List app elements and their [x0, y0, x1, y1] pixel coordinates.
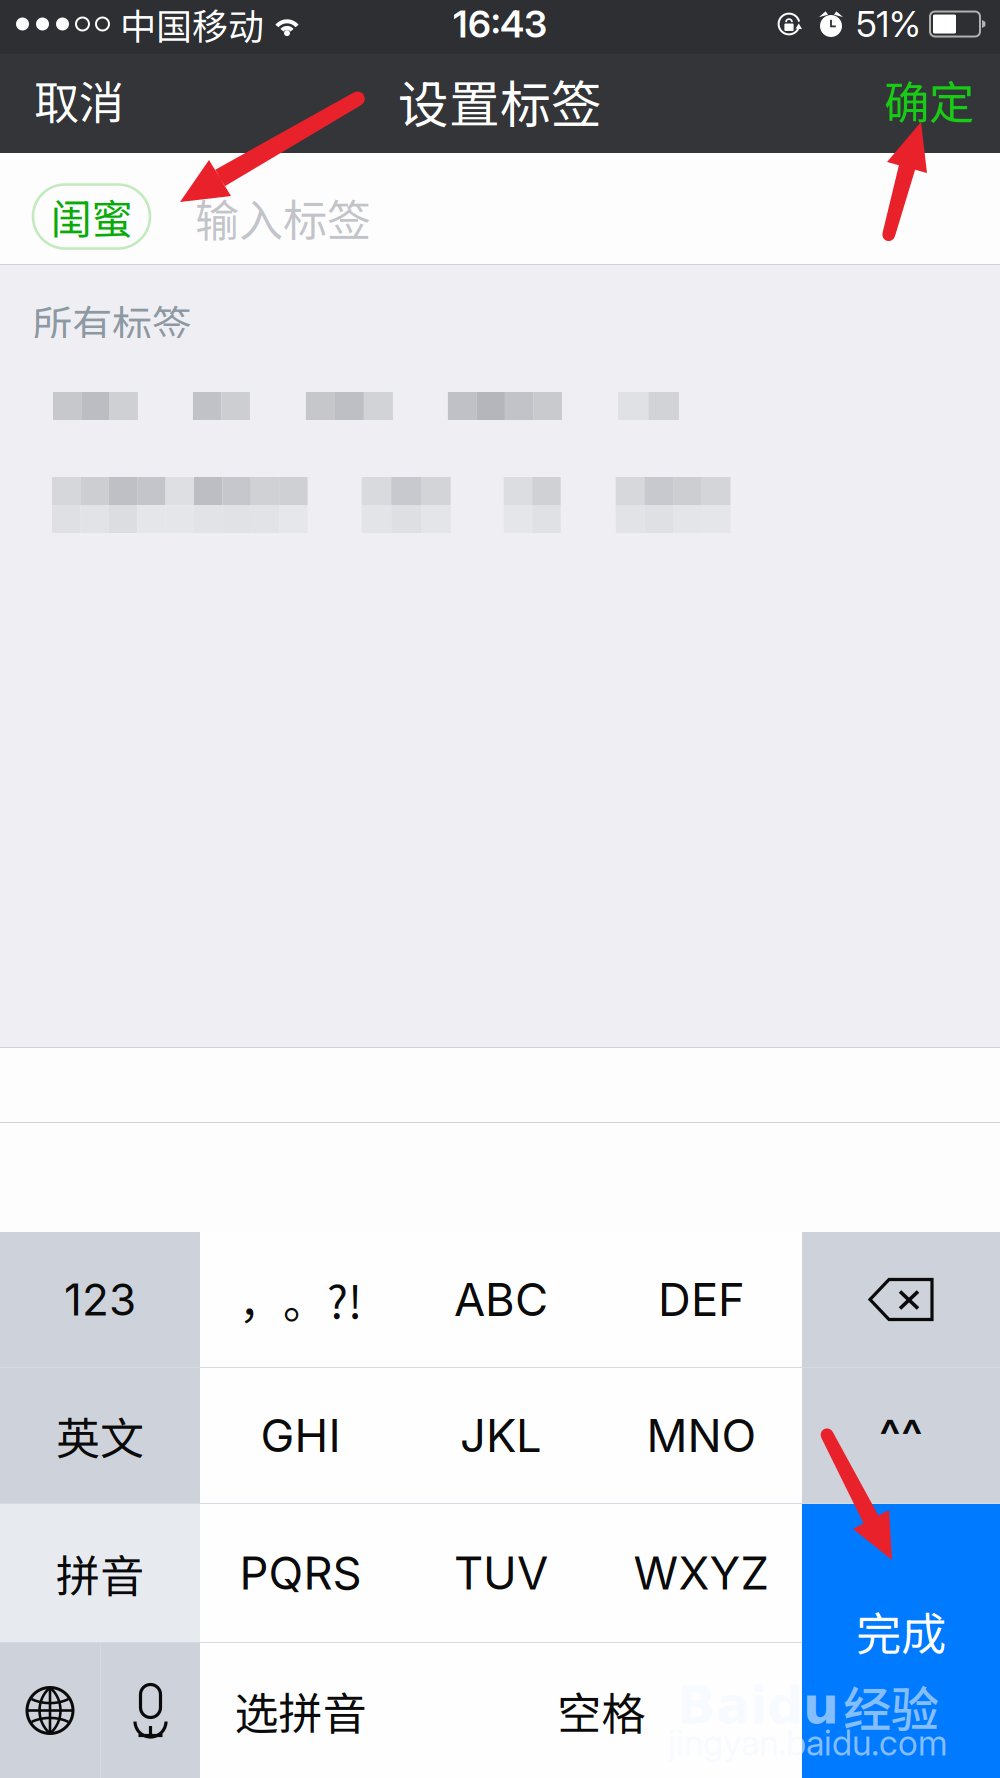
staticText: jingyan.baidu.com — [668, 1722, 948, 1764]
staticText: MNO — [646, 1408, 756, 1463]
staticText: DEF — [658, 1272, 745, 1327]
staticText: 确定 — [884, 67, 974, 132]
button[interactable]: 123 — [0, 1232, 200, 1367]
button[interactable]: 选拼音 — [200, 1643, 401, 1778]
button[interactable]: 拼音 — [0, 1504, 200, 1642]
staticText: Baidu — [677, 1676, 839, 1735]
button[interactable]: MNO — [601, 1368, 802, 1503]
button[interactable]: GHI — [200, 1368, 401, 1503]
button[interactable]: ，。?! — [200, 1232, 401, 1367]
button[interactable]: Dictate — [101, 1643, 200, 1778]
button[interactable]: 闺蜜 — [33, 184, 150, 248]
button[interactable]: 完成 — [802, 1504, 1000, 1778]
staticText: 选拼音 — [234, 1679, 366, 1742]
button[interactable]: 输入标签 — [195, 194, 371, 240]
staticText: PQRS — [239, 1546, 361, 1600]
staticText: 闺蜜 — [50, 187, 132, 246]
staticText: 123 — [64, 1273, 136, 1326]
staticText: WXYZ — [633, 1546, 769, 1600]
button[interactable]: DEF — [601, 1232, 802, 1367]
button[interactable]: ^^ — [802, 1368, 1000, 1503]
staticText: 所有标签 — [32, 293, 192, 351]
staticText: GHI — [260, 1408, 340, 1463]
staticText: 中国移动 — [120, 0, 264, 50]
staticText: ^^ — [879, 1408, 923, 1463]
button[interactable]: 取消 — [0, 55, 150, 152]
staticText: 51% — [856, 2, 921, 46]
button[interactable]: Delete — [802, 1232, 1000, 1367]
staticText: 拼音 — [56, 1541, 144, 1605]
staticText: JKL — [460, 1408, 542, 1463]
button[interactable]: PQRS — [200, 1504, 401, 1642]
staticText: 经验 — [843, 1671, 939, 1741]
staticText: 取消 — [34, 67, 124, 132]
staticText: 英文 — [56, 1404, 144, 1467]
staticText: 输入标签 — [195, 186, 371, 249]
staticText: 空格 — [557, 1679, 645, 1742]
button[interactable]: JKL — [401, 1368, 601, 1503]
button[interactable]: Switch keyboard — [0, 1643, 100, 1778]
staticText: ，。?! — [239, 1268, 362, 1331]
staticText: 16:43 — [453, 1, 547, 47]
staticText: 设置标签 — [398, 64, 602, 138]
button[interactable]: 确定 — [858, 55, 1000, 152]
button[interactable]: TUV — [401, 1504, 601, 1642]
staticText: ABC — [454, 1272, 548, 1327]
button[interactable]: 英文 — [0, 1368, 200, 1503]
button[interactable]: ABC — [401, 1232, 601, 1367]
staticText: 完成 — [856, 1598, 946, 1664]
button[interactable]: 空格 — [401, 1643, 802, 1778]
button[interactable]: WXYZ — [601, 1504, 802, 1642]
staticText: TUV — [454, 1546, 548, 1600]
